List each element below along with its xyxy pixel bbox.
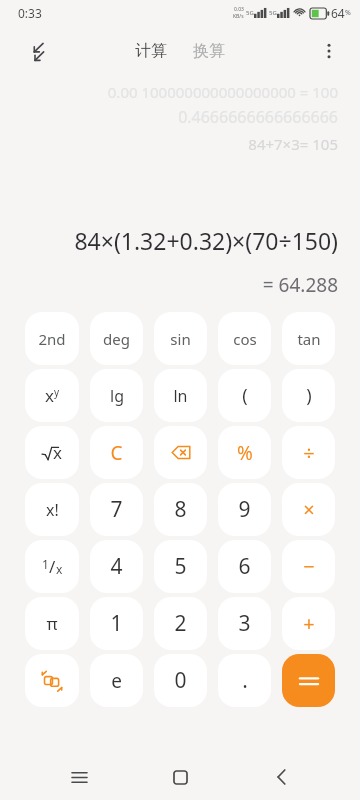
button[interactable]: Delete: [154, 426, 207, 479]
button[interactable]: 换算: [185, 35, 233, 67]
staticText: KB/s: [233, 13, 244, 20]
staticText: 4: [110, 552, 123, 581]
button[interactable]: +: [282, 597, 335, 650]
staticText: π: [46, 612, 58, 635]
button[interactable]: ÷: [282, 426, 335, 479]
button[interactable]: Recent apps: [56, 754, 102, 800]
staticText: 0.00 100000000000000000 = 100: [107, 82, 338, 102]
button[interactable]: e: [90, 654, 143, 707]
staticText: x: [45, 384, 54, 407]
staticText: cos: [233, 329, 257, 349]
staticText: −: [303, 553, 315, 580]
button[interactable]: [282, 654, 335, 707]
staticText: 6: [238, 552, 251, 581]
staticText: = 64.288: [262, 272, 338, 298]
button[interactable]: 计算: [127, 35, 175, 67]
staticText: 计算: [135, 41, 167, 61]
button[interactable]: ln: [154, 369, 207, 422]
button[interactable]: 1: [90, 597, 143, 650]
staticText: deg: [103, 329, 130, 349]
staticText: y: [54, 385, 60, 399]
staticText: x!: [46, 499, 59, 521]
button[interactable]: Home: [157, 754, 203, 800]
staticText: lg: [110, 385, 124, 407]
staticText: tan: [297, 329, 321, 349]
staticText: 1: [110, 609, 123, 638]
staticText: 84+7×3= 105: [248, 134, 338, 154]
button[interactable]: x: [25, 369, 79, 422]
button[interactable]: 8: [154, 483, 207, 536]
button[interactable]: %: [218, 426, 271, 479]
staticText: 0.4666666666666666: [178, 106, 338, 128]
staticText: %: [345, 8, 351, 18]
button[interactable]: 7: [90, 483, 143, 536]
staticText: ÷: [303, 439, 315, 466]
staticText: 7: [110, 495, 123, 524]
staticText: 1: [42, 556, 49, 572]
button[interactable]: 3: [218, 597, 271, 650]
staticText: .: [242, 666, 248, 695]
staticText: 换算: [193, 41, 225, 61]
staticText: 5: [174, 552, 187, 581]
staticText: C: [110, 440, 123, 466]
button[interactable]: cos: [218, 312, 271, 365]
button[interactable]: sin: [154, 312, 207, 365]
staticText: 5G: [269, 9, 277, 17]
button[interactable]: 2: [154, 597, 207, 650]
staticText: ln: [173, 385, 188, 407]
staticText: %: [237, 440, 253, 466]
button[interactable]: Back: [259, 754, 305, 800]
button[interactable]: 4: [90, 540, 143, 593]
staticText: 8: [174, 495, 187, 524]
staticText: +: [303, 610, 315, 637]
staticText: x: [56, 561, 63, 577]
button[interactable]: tan: [282, 312, 335, 365]
button[interactable]: lg: [90, 369, 143, 422]
staticText: 5G: [246, 9, 254, 17]
button[interactable]: Unit conversion: [25, 654, 79, 707]
staticText: ): [306, 383, 312, 408]
staticText: 3: [238, 609, 251, 638]
button[interactable]: −: [282, 540, 335, 593]
button[interactable]: ×: [282, 483, 335, 536]
staticText: 2nd: [38, 329, 66, 349]
button[interactable]: deg: [90, 312, 143, 365]
button[interactable]: (: [218, 369, 271, 422]
staticText: x: [53, 441, 62, 464]
button[interactable]: Collapse: [18, 34, 52, 68]
button[interactable]: 0: [154, 654, 207, 707]
staticText: (: [242, 383, 248, 408]
staticText: 0:33: [18, 5, 42, 21]
button[interactable]: 6: [218, 540, 271, 593]
button[interactable]: x!: [25, 483, 79, 536]
button[interactable]: 9: [218, 483, 271, 536]
button[interactable]: .: [218, 654, 271, 707]
staticText: 2: [174, 609, 187, 638]
button[interactable]: x: [25, 426, 79, 479]
button[interactable]: More options: [312, 34, 346, 68]
staticText: /: [49, 555, 56, 578]
staticText: 9: [238, 495, 251, 524]
button[interactable]: 1: [25, 540, 79, 593]
button[interactable]: 2nd: [25, 312, 79, 365]
button[interactable]: 5: [154, 540, 207, 593]
staticText: e: [111, 668, 122, 694]
staticText: 0.03: [234, 6, 244, 13]
staticText: 0: [174, 666, 187, 695]
staticText: 84×(1.32+0.32)×(70÷150): [74, 225, 338, 256]
staticText: ×: [303, 496, 315, 523]
staticText: 64: [331, 5, 345, 21]
staticText: sin: [170, 329, 191, 349]
button[interactable]: ): [282, 369, 335, 422]
button[interactable]: C: [90, 426, 143, 479]
button[interactable]: π: [25, 597, 79, 650]
